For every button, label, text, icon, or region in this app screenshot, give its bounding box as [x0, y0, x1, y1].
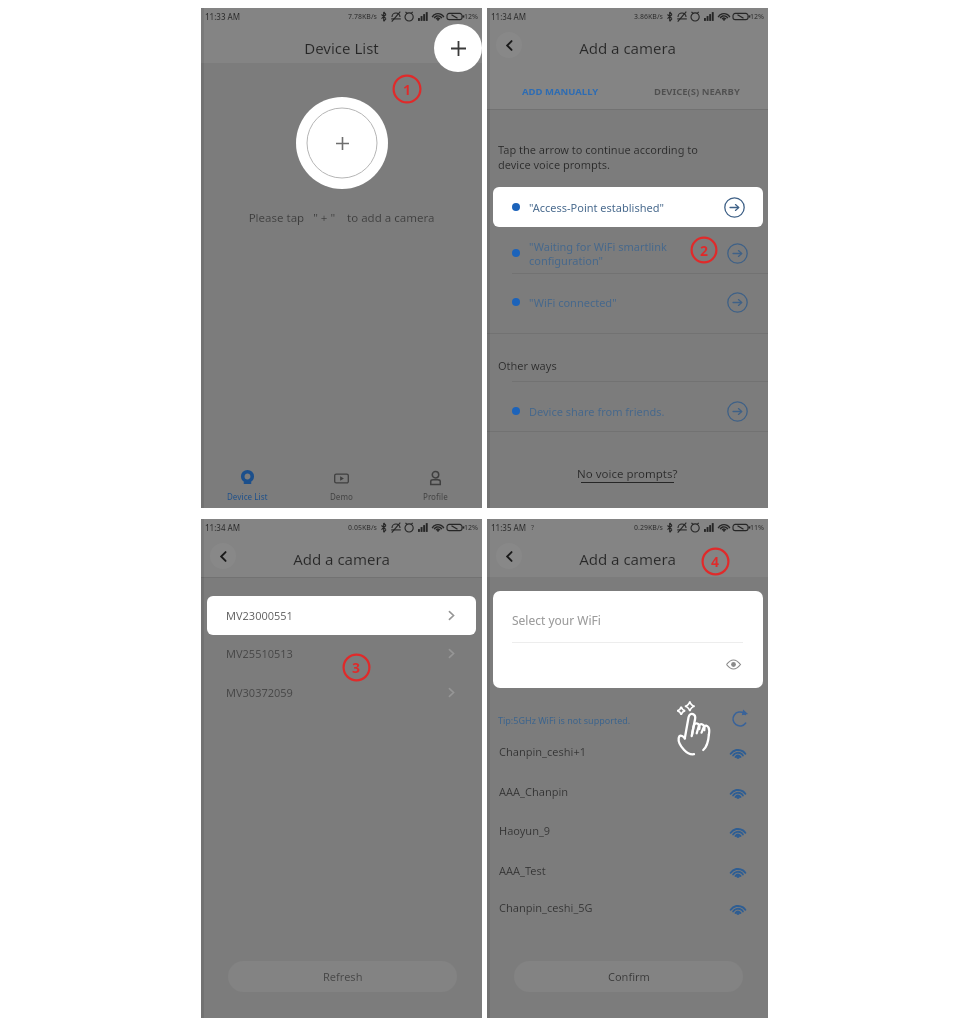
staticText: Please tap " + " to add a camera	[201, 210, 482, 226]
staticText: 11:34 AM	[205, 522, 241, 533]
staticText: 2	[700, 241, 709, 260]
staticText: 11%	[750, 523, 764, 533]
staticText: Confirm	[608, 969, 650, 984]
staticText: DEVICE(S) NEARBY	[654, 85, 740, 98]
button[interactable]: "Waiting for WiFi smartlink configuratio…	[487, 230, 768, 276]
staticText: "Access-Point established"	[529, 200, 664, 215]
staticText: 12%	[464, 12, 478, 22]
button[interactable]: MV30372059	[201, 673, 482, 711]
button[interactable]: Back	[210, 543, 236, 569]
staticText: "Waiting for WiFi smartlink configuratio…	[529, 239, 667, 268]
button[interactable]: "WiFi connected"	[487, 281, 768, 323]
staticText: "WiFi connected"	[529, 295, 617, 310]
button[interactable]: Chanpin_ceshi+1	[487, 732, 768, 771]
button[interactable]: MV23000551	[207, 596, 476, 635]
staticText: ?	[531, 523, 535, 533]
staticText: AAA_Test	[499, 863, 546, 878]
staticText: Other ways	[498, 358, 557, 373]
staticText: Device share from friends.	[529, 404, 665, 419]
staticText: AAA_Chanpin	[499, 784, 569, 799]
staticText: 0.29KB/s	[634, 523, 664, 533]
staticText: Profile	[423, 491, 448, 502]
button[interactable]: Device share from friends.	[487, 391, 768, 431]
staticText: ADD MANUALLY	[522, 85, 599, 98]
button[interactable]: ADD MANUALLY	[505, 82, 615, 100]
button[interactable]: Refresh	[228, 961, 457, 992]
staticText: 11:35 AM	[491, 522, 527, 533]
staticText: 11:33 AM	[205, 11, 241, 22]
button[interactable]: DEVICE(S) NEARBY	[642, 82, 752, 100]
button[interactable]: Back	[496, 543, 522, 569]
staticText: Haoyun_9	[499, 823, 551, 838]
button[interactable]: Haoyun_9	[487, 811, 768, 850]
staticText: Add a camera	[487, 549, 768, 569]
staticText: 4	[711, 552, 720, 571]
staticText: Demo	[330, 491, 353, 502]
button[interactable]: No voice prompts?	[487, 466, 768, 483]
button[interactable]: "Access-Point established"	[493, 187, 763, 227]
staticText: 1	[403, 80, 412, 99]
staticText: 11:34 AM	[491, 11, 527, 22]
staticText: Select your WiFi	[512, 612, 601, 628]
staticText: 12%	[750, 12, 764, 22]
staticText: Chanpin_ceshi+1	[499, 744, 586, 759]
button[interactable]: Refresh	[730, 709, 750, 729]
staticText: 12%	[464, 523, 478, 533]
staticText: No voice prompts?	[577, 466, 678, 482]
staticText: Tap the arrow to continue according to d…	[498, 142, 698, 172]
staticText: Device List	[201, 38, 482, 58]
staticText: Chanpin_ceshi_5G	[499, 900, 593, 915]
button[interactable]: Chanpin_ceshi_5G	[487, 888, 768, 927]
staticText: 3	[352, 658, 361, 677]
staticText: Add a camera	[201, 549, 482, 569]
button[interactable]: Profile	[388, 464, 482, 508]
staticText: MV30372059	[226, 685, 293, 700]
staticText: 7.78KB/s	[348, 12, 378, 22]
button[interactable]: Confirm	[514, 961, 743, 992]
staticText: 0.05KB/s	[348, 523, 378, 533]
button[interactable]: Add	[434, 24, 482, 72]
button[interactable]: Add camera	[296, 97, 388, 189]
button[interactable]: Show password	[722, 653, 744, 675]
staticText: MV25510513	[226, 646, 293, 661]
staticText: Refresh	[323, 969, 363, 984]
staticText: MV23000551	[226, 608, 293, 623]
staticText: Add a camera	[487, 38, 768, 58]
button[interactable]: AAA_Chanpin	[487, 772, 768, 811]
button[interactable]: AAA_Test	[487, 851, 768, 890]
button[interactable]: Back	[496, 32, 522, 58]
button[interactable]: Device List	[201, 464, 294, 508]
staticText: 3.86KB/s	[634, 12, 664, 22]
button[interactable]: MV25510513	[201, 634, 482, 672]
staticText: Tip:5GHz WiFi is not supported.	[498, 714, 631, 726]
staticText: Device List	[227, 491, 268, 502]
button[interactable]: Demo	[294, 464, 388, 508]
